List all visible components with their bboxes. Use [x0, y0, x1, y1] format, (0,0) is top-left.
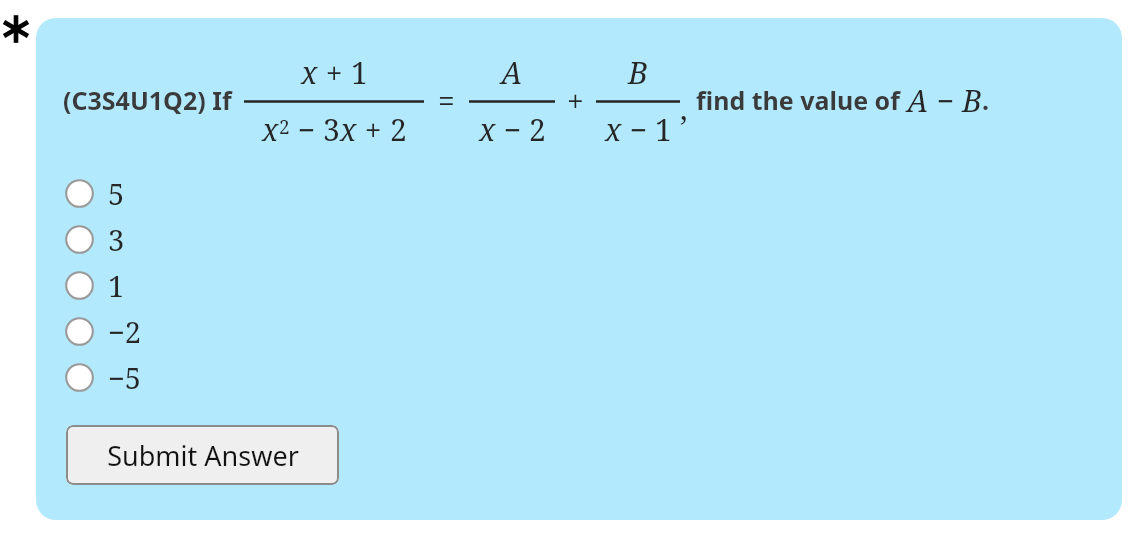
button[interactable]: 1: [65, 262, 125, 308]
staticText: −: [496, 109, 529, 150]
button[interactable]: −2: [65, 308, 142, 354]
staticText: −: [622, 109, 655, 150]
staticText: 2: [529, 109, 546, 150]
staticText: 2: [390, 109, 407, 150]
staticText: +: [357, 109, 390, 150]
staticText: =: [438, 80, 455, 121]
staticText: x: [262, 109, 279, 150]
staticText: B: [628, 52, 648, 93]
staticText: A: [907, 80, 929, 121]
button[interactable]: Submit Answer: [66, 425, 339, 485]
staticText: 2: [279, 114, 290, 140]
staticText: −: [929, 80, 962, 121]
staticText: 1: [351, 52, 368, 93]
button[interactable]: 3: [65, 216, 125, 262]
staticText: x: [340, 109, 357, 150]
staticText: (C3S4U1Q2) If: [63, 83, 232, 117]
staticText: 3: [108, 220, 125, 259]
button[interactable]: 5: [65, 170, 125, 216]
staticText: −5: [108, 358, 142, 397]
staticText: ,: [680, 88, 688, 129]
staticText: .: [982, 83, 990, 117]
staticText: find the value of: [696, 83, 907, 117]
staticText: +: [567, 80, 584, 121]
staticText: x: [479, 109, 496, 150]
staticText: −2: [108, 312, 142, 351]
staticText: A: [501, 52, 523, 93]
staticText: −: [290, 109, 323, 150]
staticText: +: [318, 52, 351, 93]
staticText: B: [962, 80, 982, 121]
staticText: x: [301, 52, 318, 93]
staticText: 3: [323, 109, 340, 150]
staticText: x: [605, 109, 622, 150]
staticText: 1: [655, 109, 672, 150]
staticText: Submit Answer: [107, 437, 299, 474]
button[interactable]: −5: [65, 354, 142, 400]
staticText: 5: [108, 174, 125, 213]
staticText: 1: [108, 266, 125, 305]
